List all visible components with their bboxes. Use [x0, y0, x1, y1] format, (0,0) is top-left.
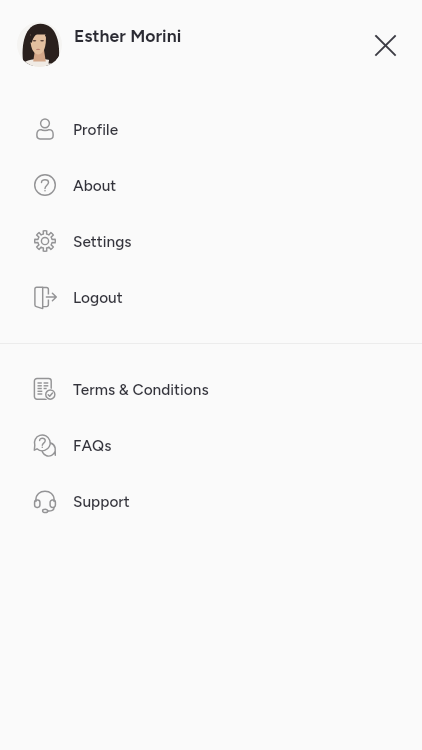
staticText: Esther Morini: [74, 25, 182, 46]
staticText: Terms & Conditions: [73, 380, 209, 398]
button[interactable]: Terms & Conditions: [0, 361, 422, 417]
button[interactable]: About: [0, 157, 422, 213]
button[interactable]: Esther Morini: [74, 25, 182, 46]
staticText: FAQs: [73, 436, 112, 454]
staticText: Settings: [73, 232, 132, 250]
button[interactable]: Support: [0, 473, 422, 529]
button[interactable]: Profile: [0, 101, 422, 157]
button[interactable]: Settings: [0, 213, 422, 269]
button[interactable]: FAQs: [0, 417, 422, 473]
staticText: Profile: [73, 120, 119, 138]
staticText: Logout: [73, 288, 123, 306]
staticText: Support: [73, 492, 130, 510]
staticText: About: [73, 176, 117, 194]
button[interactable]: Logout: [0, 269, 422, 325]
button[interactable]: Close: [358, 18, 412, 72]
